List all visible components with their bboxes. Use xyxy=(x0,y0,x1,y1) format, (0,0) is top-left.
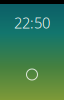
staticText: 22:50 xyxy=(14,13,50,32)
button[interactable]: Unlock xyxy=(26,69,37,80)
